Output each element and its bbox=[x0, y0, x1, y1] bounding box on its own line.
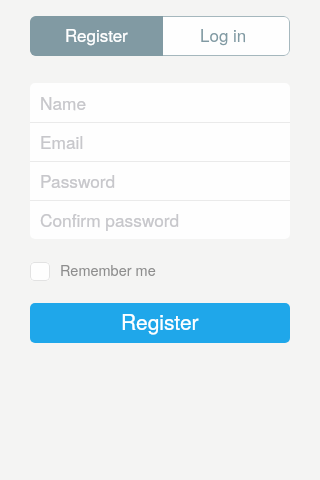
button[interactable]: Email bbox=[30, 122, 290, 161]
staticText: Register bbox=[65, 22, 128, 46]
staticText: Password bbox=[40, 168, 116, 193]
button[interactable]: Name bbox=[30, 83, 290, 122]
staticText: Email bbox=[40, 129, 84, 154]
button[interactable]: Remember me bbox=[30, 261, 156, 282]
staticText: Register bbox=[121, 306, 199, 336]
button[interactable]: Register bbox=[30, 16, 163, 56]
button[interactable]: Confirm password bbox=[30, 200, 290, 239]
button[interactable]: Password bbox=[30, 161, 290, 200]
button[interactable]: Register bbox=[30, 303, 290, 343]
button[interactable]: Log in bbox=[163, 16, 290, 56]
staticText: Confirm password bbox=[40, 207, 180, 232]
staticText: Log in bbox=[200, 22, 247, 46]
staticText: Name bbox=[40, 90, 87, 115]
staticText: Remember me bbox=[60, 259, 156, 280]
